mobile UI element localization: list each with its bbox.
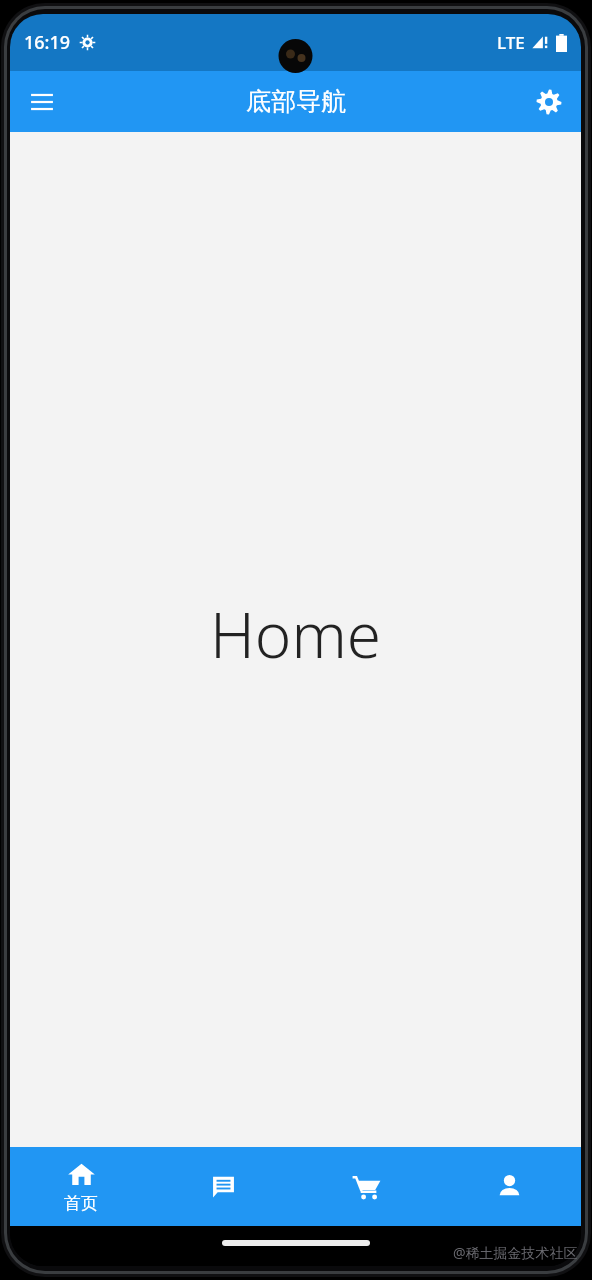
button[interactable]: Menu [18, 78, 66, 126]
staticText: LTE [497, 31, 525, 54]
staticText: @稀土掘金技术社区 [453, 1243, 578, 1262]
button[interactable]: Home [10, 1154, 152, 1220]
button[interactable]: Profile [438, 1166, 581, 1207]
button[interactable]: Cart [295, 1166, 438, 1207]
staticText: Home [210, 592, 381, 676]
staticText: 16:19 [24, 30, 71, 55]
staticText: 首页 [64, 1193, 98, 1214]
button[interactable]: Messages [152, 1166, 295, 1207]
button[interactable]: Settings [525, 78, 573, 126]
staticText: 底部导航 [246, 86, 346, 117]
